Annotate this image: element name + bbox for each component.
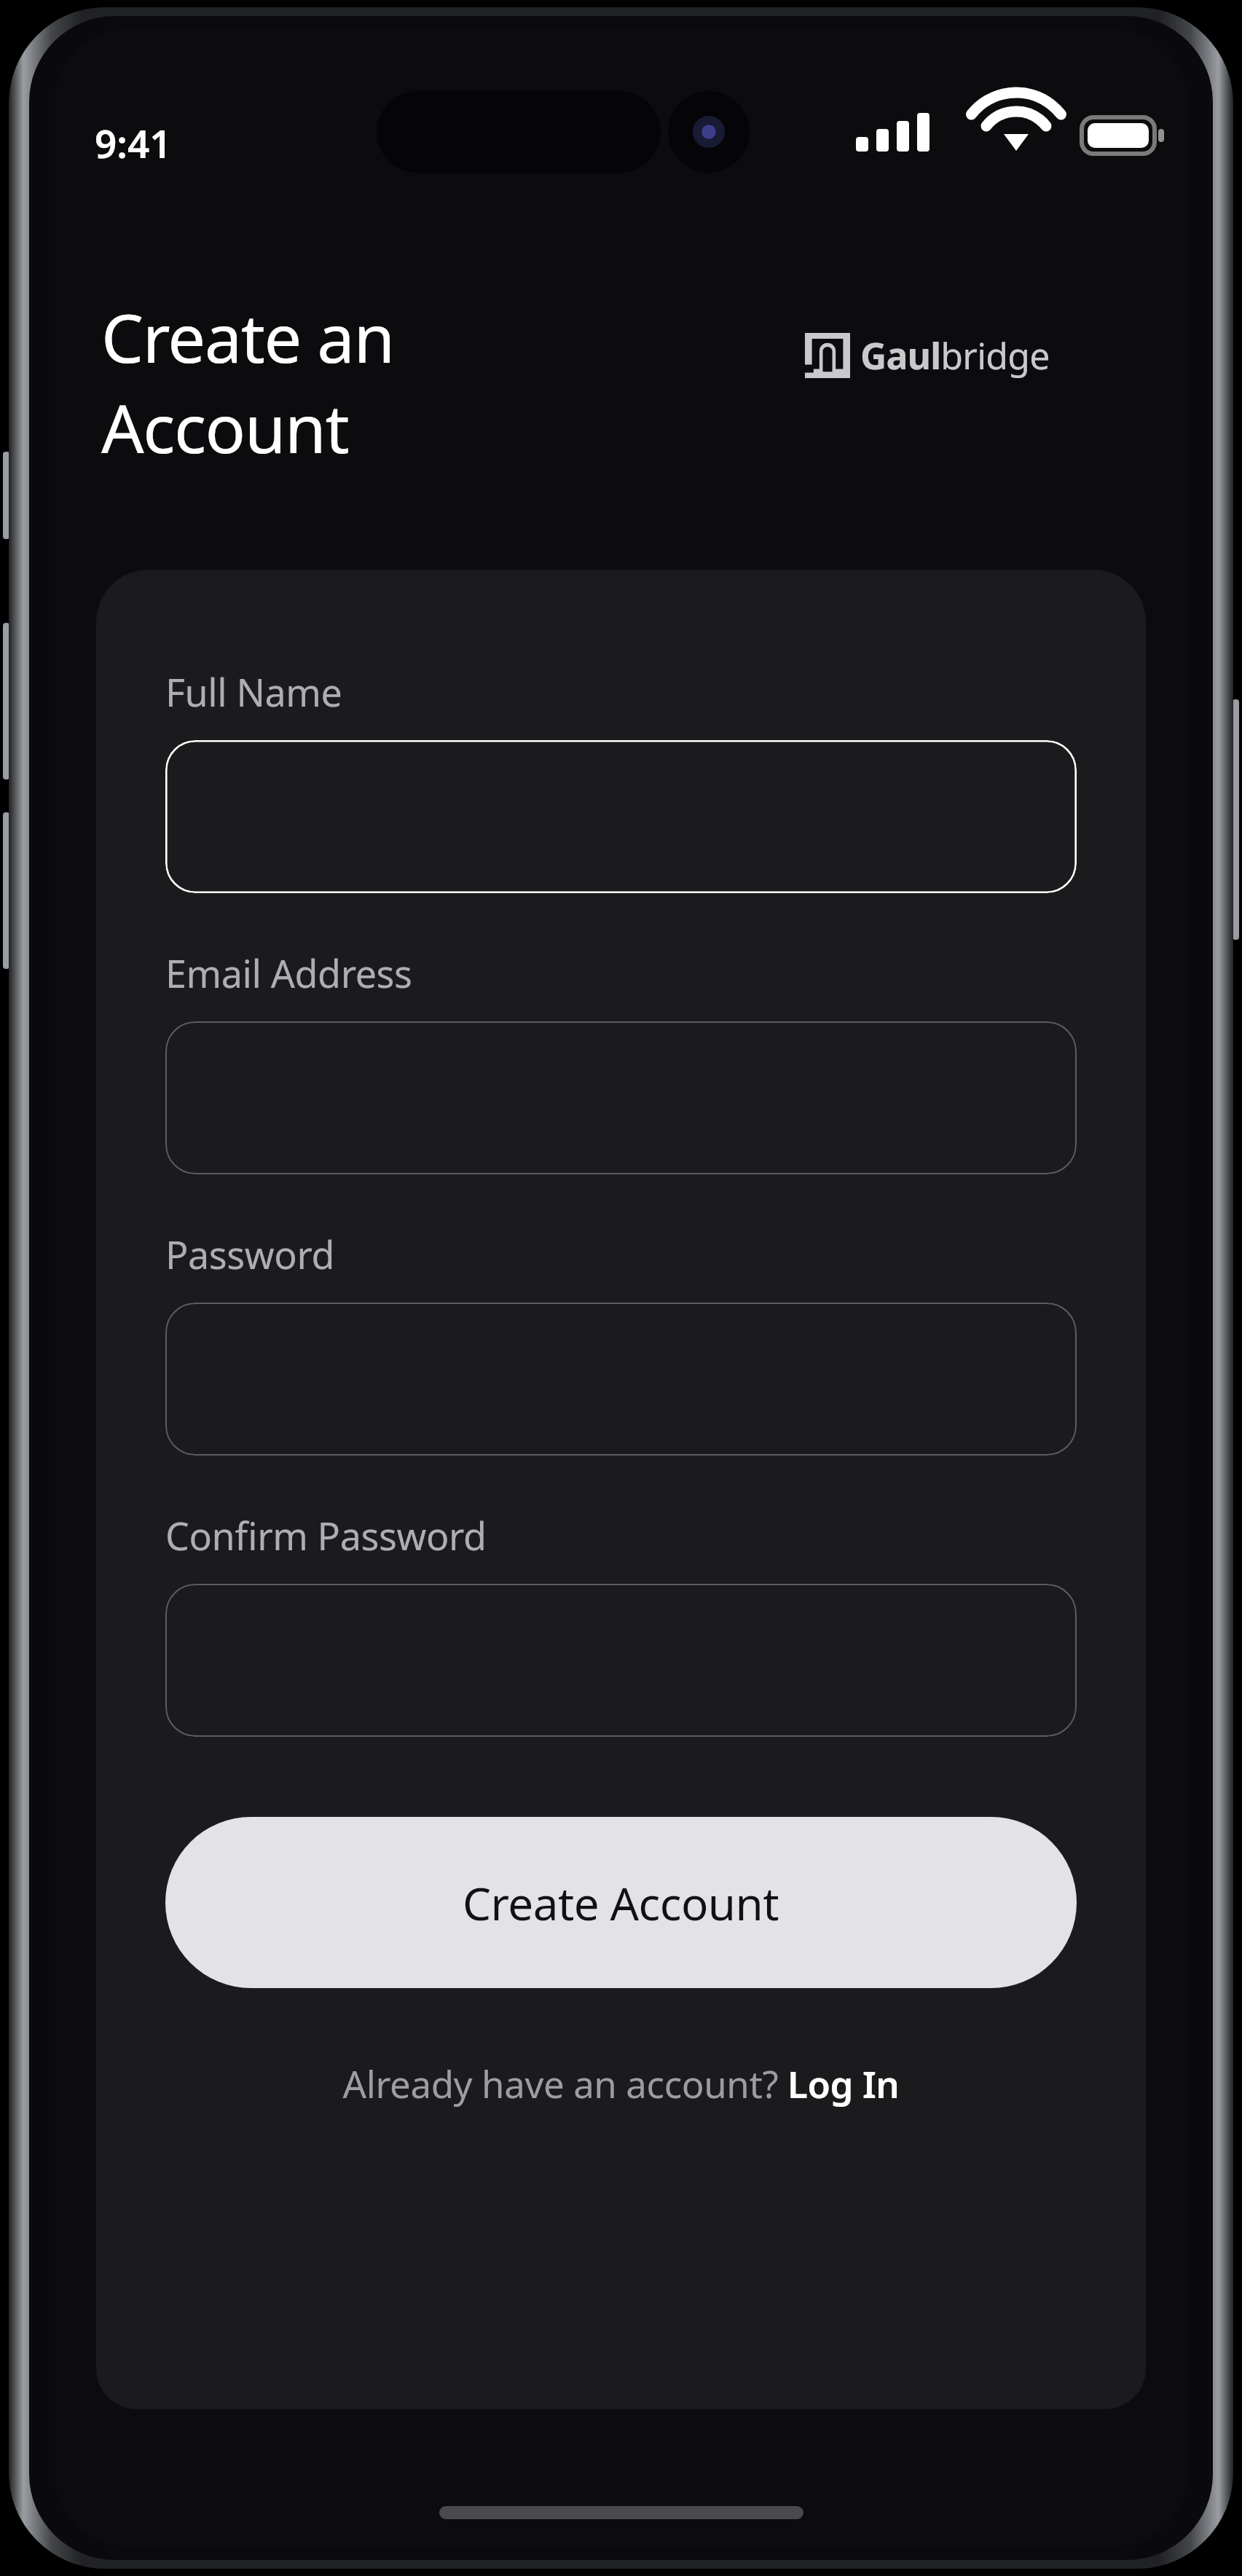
button[interactable]: Text field	[165, 1584, 1077, 1737]
staticText: 9:41	[95, 117, 172, 169]
button[interactable]: Gaulbridge	[805, 329, 1050, 382]
button[interactable]: Text field	[165, 1303, 1077, 1456]
button[interactable]: Already have an account? Log In	[96, 2058, 1146, 2138]
staticText: Confirm Password	[165, 1509, 487, 1561]
staticText: Password	[165, 1228, 334, 1280]
button[interactable]: Text field	[165, 740, 1077, 893]
staticText: Create an Account	[101, 291, 699, 473]
staticText: Create Account	[463, 1872, 779, 1933]
staticText: Gaulbridge	[860, 331, 1050, 380]
button[interactable]: Create Account	[165, 1817, 1077, 1988]
staticText: Already have an account? Log In	[342, 2058, 900, 2108]
staticText: Full Name	[165, 666, 342, 718]
staticText: Email Address	[165, 947, 412, 999]
button[interactable]: Text field	[165, 1021, 1077, 1174]
